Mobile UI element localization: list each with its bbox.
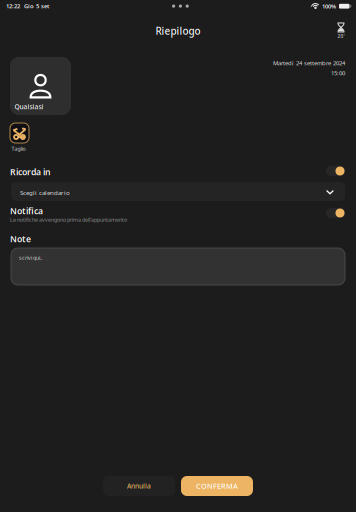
button[interactable]: Scegli calendario — [11, 182, 345, 201]
staticText: 12:22 Gio 5 set — [6, 2, 49, 10]
button[interactable]: Durata appuntamento — [332, 21, 350, 41]
staticText: Annulla — [127, 481, 151, 491]
staticText: CONFERMA — [196, 481, 238, 491]
staticText: Martedì 24 settembre 2024 — [273, 59, 345, 67]
staticText: 20' — [337, 33, 344, 39]
button[interactable]: Annulla — [103, 476, 175, 496]
staticText: Scegli calendario — [20, 188, 70, 197]
button[interactable]: Ricorda in — [326, 166, 345, 176]
staticText: 100% — [322, 2, 336, 10]
staticText: 15:00 — [331, 69, 345, 77]
staticText: scrivi qui.. — [19, 254, 42, 261]
button[interactable]: CONFERMA — [181, 476, 253, 496]
staticText: Qualsiasi — [14, 102, 43, 111]
button[interactable]: Note — [11, 248, 345, 285]
button[interactable]: Qualsiasi operatore — [10, 57, 71, 115]
staticText: Taglio — [11, 145, 25, 152]
staticText: Notifica — [10, 205, 43, 217]
staticText: Note — [10, 233, 31, 245]
button[interactable]: Notifica — [326, 208, 345, 218]
staticText: Riepilogo — [155, 24, 200, 38]
staticText: Ricorda in — [10, 166, 51, 178]
staticText: Le notifiche avvengono prima dell'appunt… — [10, 216, 127, 223]
